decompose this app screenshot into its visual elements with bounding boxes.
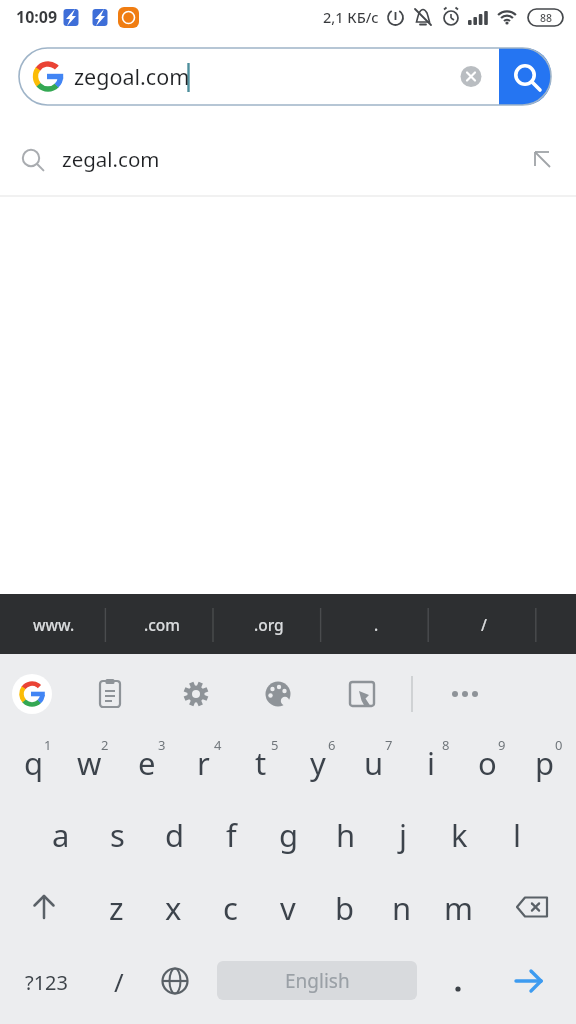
button[interactable]: p xyxy=(516,727,573,799)
button[interactable]: l xyxy=(488,799,545,871)
staticText: v xyxy=(280,887,296,929)
staticText: x xyxy=(165,887,182,929)
button[interactable]: a xyxy=(32,799,89,871)
staticText: z xyxy=(109,887,124,929)
button[interactable] xyxy=(84,668,136,720)
staticText: y xyxy=(310,742,326,784)
button[interactable] xyxy=(8,871,80,943)
button[interactable]: / xyxy=(90,945,147,1017)
staticText: h xyxy=(336,814,356,856)
button[interactable]: k xyxy=(431,799,488,871)
staticText: 5 xyxy=(271,736,279,754)
button[interactable] xyxy=(439,668,491,720)
staticText: g xyxy=(279,814,299,856)
button[interactable]: r xyxy=(175,727,232,799)
button[interactable]: t xyxy=(232,727,289,799)
staticText: zegoal.com xyxy=(74,62,190,91)
button[interactable]: d xyxy=(146,799,203,871)
staticText: p xyxy=(535,742,555,784)
button[interactable]: g xyxy=(260,799,317,871)
button[interactable] xyxy=(499,48,551,105)
staticText: 10:09 xyxy=(16,6,58,28)
staticText: .com xyxy=(144,614,180,635)
staticText: 4 xyxy=(214,736,222,754)
staticText: English xyxy=(285,968,350,994)
staticText: 7 xyxy=(385,736,393,754)
staticText: www. xyxy=(33,614,75,635)
button[interactable]: w xyxy=(61,727,118,799)
staticText: o xyxy=(478,742,497,784)
staticText: w xyxy=(77,742,102,784)
staticText: e xyxy=(138,742,156,784)
button[interactable]: x xyxy=(145,872,202,944)
button[interactable]: . xyxy=(323,594,430,654)
staticText: n xyxy=(392,887,412,929)
staticText: j xyxy=(399,814,407,856)
button[interactable] xyxy=(147,945,203,1017)
staticText: 3 xyxy=(158,736,166,754)
staticText: 8 xyxy=(442,736,450,754)
staticText: . xyxy=(374,614,379,635)
button[interactable] xyxy=(252,668,304,720)
staticText: f xyxy=(226,814,237,856)
staticText: q xyxy=(24,742,44,784)
button[interactable]: u xyxy=(345,727,402,799)
button[interactable]: / xyxy=(430,594,537,654)
staticText: d xyxy=(165,814,185,856)
staticText: b xyxy=(335,887,355,929)
staticText: a xyxy=(52,814,70,856)
button[interactable]: m xyxy=(430,872,487,944)
button[interactable]: c xyxy=(202,872,259,944)
staticText: 0 xyxy=(555,736,563,754)
staticText: / xyxy=(481,614,487,635)
button[interactable] xyxy=(0,128,576,194)
button[interactable]: y xyxy=(289,727,346,799)
button[interactable]: o xyxy=(459,727,516,799)
staticText: i xyxy=(427,742,435,784)
staticText: k xyxy=(451,814,468,856)
staticText: .org xyxy=(254,614,284,635)
button[interactable]: ?123 xyxy=(11,946,81,1018)
button[interactable]: j xyxy=(374,799,431,871)
button[interactable]: i xyxy=(402,727,459,799)
staticText: / xyxy=(114,964,124,999)
staticText: m xyxy=(444,887,473,929)
button[interactable]: f xyxy=(203,799,260,871)
button[interactable]: v xyxy=(259,872,316,944)
staticText: 2,1 КБ/с xyxy=(323,7,379,27)
button[interactable]: b xyxy=(316,872,373,944)
button[interactable] xyxy=(170,668,222,720)
button[interactable]: e xyxy=(118,727,175,799)
staticText: ?123 xyxy=(25,969,68,996)
button[interactable]: s xyxy=(89,799,146,871)
button[interactable]: www. xyxy=(0,594,107,654)
staticText: 1 xyxy=(44,736,52,754)
button[interactable] xyxy=(336,668,388,720)
staticText: u xyxy=(364,742,384,784)
button[interactable] xyxy=(6,668,58,720)
staticText: 6 xyxy=(328,736,336,754)
button[interactable] xyxy=(497,945,569,1017)
staticText: c xyxy=(223,887,238,929)
button[interactable]: .com xyxy=(108,594,215,654)
staticText: 2 xyxy=(101,736,109,754)
button[interactable]: English xyxy=(217,961,417,1000)
button[interactable]: z xyxy=(88,872,145,944)
staticText: 9 xyxy=(498,736,506,754)
staticText: s xyxy=(110,814,125,856)
staticText: l xyxy=(513,814,521,856)
button[interactable]: n xyxy=(373,872,430,944)
staticText: t xyxy=(255,742,267,784)
staticText: zegal.com xyxy=(62,145,160,173)
button[interactable]: q xyxy=(5,727,62,799)
button[interactable] xyxy=(430,945,486,1017)
button[interactable]: .org xyxy=(215,594,322,654)
button[interactable] xyxy=(19,48,551,105)
button[interactable] xyxy=(497,871,569,943)
staticText: 88 xyxy=(540,11,553,25)
staticText: r xyxy=(197,742,210,784)
button[interactable]: h xyxy=(317,799,374,871)
